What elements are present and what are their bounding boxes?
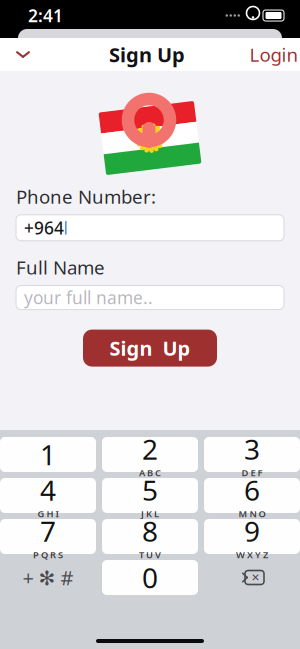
staticText: M N O [238, 507, 265, 520]
staticText: 5 [142, 471, 158, 508]
button[interactable]: Symbols [0, 560, 96, 595]
staticText: + ✻ # [22, 564, 73, 591]
staticText: +964 [24, 216, 64, 239]
button[interactable]: 2 [102, 437, 198, 472]
button[interactable]: 9 [204, 519, 300, 554]
button[interactable]: Login [248, 34, 300, 74]
staticText: J K L [141, 507, 159, 520]
staticText: T U V [139, 548, 161, 561]
staticText: Sign Up [109, 41, 185, 68]
button[interactable]: Delete [204, 560, 300, 595]
staticText: 1 [40, 436, 56, 473]
staticText: ✕ [251, 571, 260, 583]
staticText: P Q R S [33, 548, 63, 561]
button[interactable]: 6 [204, 478, 300, 513]
staticText: Sign Up [109, 335, 190, 361]
staticText: Login [249, 42, 298, 67]
button[interactable]: +964 [16, 215, 284, 241]
staticText: A B C [139, 466, 161, 479]
staticText: 4 [40, 471, 56, 508]
staticText: 3 [244, 430, 260, 467]
staticText: W X Y Z [236, 548, 268, 561]
staticText: Phone Number: [16, 184, 156, 209]
button[interactable]: 7 [0, 519, 96, 554]
staticText: 0 [142, 559, 158, 596]
button[interactable]: your full name.. [16, 286, 284, 310]
button[interactable]: 4 [0, 478, 96, 513]
button[interactable]: 0 [102, 560, 198, 595]
staticText: 2:41 [28, 4, 63, 27]
staticText: G H I [37, 507, 58, 520]
staticText: 9 [244, 512, 260, 549]
staticText: 7 [40, 512, 56, 549]
button[interactable]: Sign Up [83, 330, 217, 367]
staticText: D E F [241, 466, 262, 479]
button[interactable]: Dismiss [0, 34, 46, 74]
button[interactable]: 5 [102, 478, 198, 513]
staticText: 2 [142, 430, 158, 467]
button[interactable]: 3 [204, 437, 300, 472]
staticText: 8 [142, 512, 158, 549]
staticText: Full Name [16, 255, 105, 280]
button[interactable]: 1 [0, 437, 96, 472]
staticText: 6 [244, 471, 260, 508]
staticText: your full name.. [24, 286, 153, 309]
button[interactable]: 8 [102, 519, 198, 554]
